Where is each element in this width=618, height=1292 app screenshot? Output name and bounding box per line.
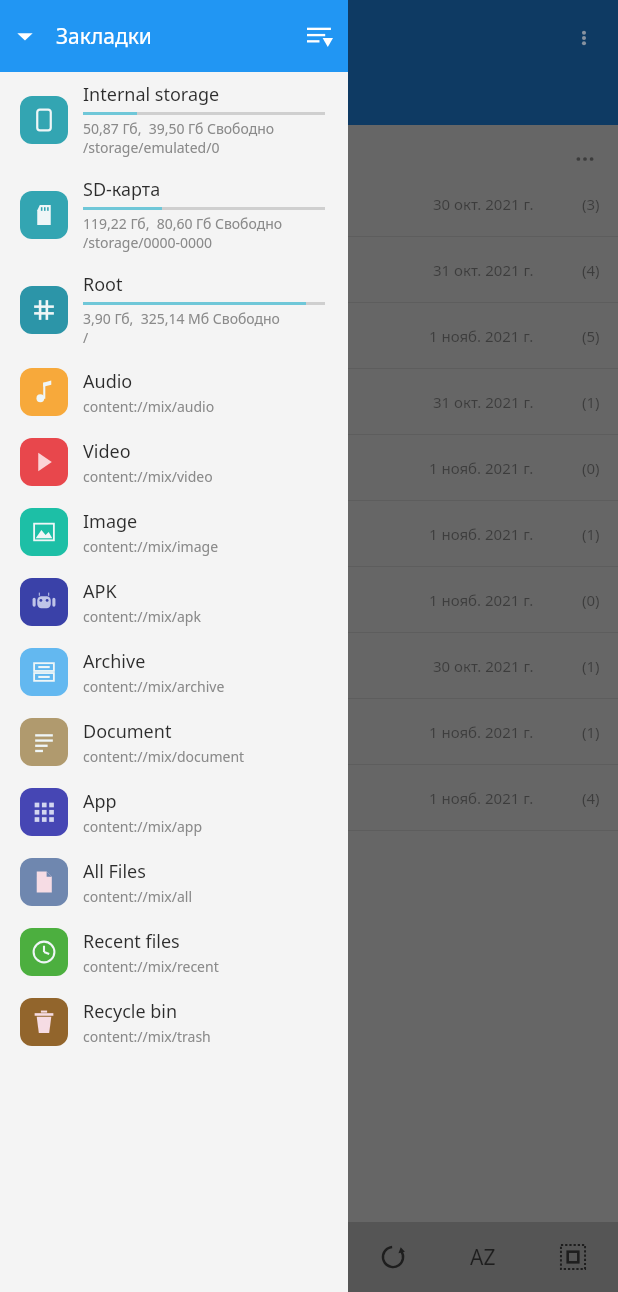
- staticText: SD-карта: [83, 177, 161, 202]
- staticText: 1 нояб. 2021 г.: [429, 590, 534, 610]
- staticText: Audio: [83, 369, 133, 394]
- staticText: content://mix/audio: [83, 397, 215, 416]
- staticText: content://mix/trash: [83, 1027, 211, 1046]
- button[interactable]: 1 нояб. 2021 г.: [0, 435, 618, 501]
- button[interactable]: Archive: [0, 637, 348, 707]
- staticText: (4): [582, 788, 600, 808]
- button[interactable]: 31 окт. 2021 г.: [0, 369, 618, 435]
- staticText: App: [83, 789, 117, 814]
- button[interactable]: Refresh: [348, 1222, 438, 1292]
- staticText: content://mix/app: [83, 817, 203, 836]
- staticText: 50,87 Гб, 39,50 Гб Свободно: [83, 119, 275, 138]
- button[interactable]: Column options: [565, 139, 605, 179]
- staticText: 1 нояб. 2021 г.: [429, 326, 534, 346]
- button[interactable]: 31 окт. 2021 г.: [0, 237, 618, 303]
- staticText: Document: [83, 719, 172, 744]
- staticText: 31 окт. 2021 г.: [433, 392, 534, 412]
- button[interactable]: Document: [0, 707, 348, 777]
- staticText: 1 нояб. 2021 г.: [429, 722, 534, 742]
- button[interactable]: 1 нояб. 2021 г.: [0, 567, 618, 633]
- staticText: 1 нояб. 2021 г.: [429, 524, 534, 544]
- staticText: All Files: [83, 859, 146, 884]
- staticText: content://mix/video: [83, 467, 213, 486]
- staticText: 31 окт. 2021 г.: [433, 260, 534, 280]
- staticText: /storage/0000-0000: [83, 233, 213, 252]
- staticText: Archive: [83, 649, 146, 674]
- button[interactable]: All Files: [0, 847, 348, 917]
- staticText: Image: [83, 509, 138, 534]
- staticText: (3): [582, 194, 600, 214]
- staticText: content://mix/archive: [83, 677, 225, 696]
- staticText: 119,22 Гб, 80,60 Гб Свободно: [83, 214, 283, 233]
- button[interactable]: 1 нояб. 2021 г.: [0, 501, 618, 567]
- button[interactable]: 1 нояб. 2021 г.: [0, 303, 618, 369]
- staticText: 30 окт. 2021 г.: [433, 656, 534, 676]
- staticText: Recycle bin: [83, 999, 178, 1024]
- staticText: /storage/emulated/0: [83, 138, 220, 157]
- staticText: AZ: [470, 1243, 496, 1272]
- button[interactable]: APK: [0, 567, 348, 637]
- staticText: 3,90 Гб, 325,14 Мб Свободно: [83, 309, 280, 328]
- staticText: content://mix/image: [83, 537, 219, 556]
- staticText: (1): [582, 722, 600, 742]
- staticText: (1): [582, 656, 600, 676]
- staticText: Закладки: [56, 22, 152, 51]
- staticText: content://mix/recent: [83, 957, 219, 976]
- staticText: /: [83, 328, 89, 347]
- staticText: (1): [582, 524, 600, 544]
- button[interactable]: Sort: [292, 8, 348, 64]
- staticText: content://mix/apk: [83, 607, 201, 626]
- button[interactable]: Image: [0, 497, 348, 567]
- staticText: content://mix/all: [83, 887, 193, 906]
- staticText: (0): [582, 458, 600, 478]
- staticText: content://mix/document: [83, 747, 245, 766]
- button[interactable]: Recent files: [0, 917, 348, 987]
- button[interactable]: 1 нояб. 2021 г.: [0, 699, 618, 765]
- button[interactable]: Recycle bin: [0, 987, 348, 1057]
- button[interactable]: 30 окт. 2021 г.: [0, 633, 618, 699]
- staticText: (0): [582, 590, 600, 610]
- staticText: 1 нояб. 2021 г.: [429, 788, 534, 808]
- button[interactable]: Video: [0, 427, 348, 497]
- button[interactable]: Select all: [528, 1222, 618, 1292]
- staticText: (1): [582, 392, 600, 412]
- button[interactable]: App: [0, 777, 348, 847]
- button[interactable]: Internal storage: [0, 72, 348, 167]
- button[interactable]: More options: [560, 14, 608, 62]
- staticText: (4): [582, 260, 600, 280]
- staticText: 1 нояб. 2021 г.: [429, 458, 534, 478]
- staticText: 30 окт. 2021 г.: [433, 194, 534, 214]
- button[interactable]: 1 нояб. 2021 г.: [0, 765, 618, 831]
- button[interactable]: AZ: [438, 1222, 528, 1292]
- staticText: Internal storage: [83, 82, 220, 107]
- staticText: (5): [582, 326, 600, 346]
- button[interactable]: Audio: [0, 357, 348, 427]
- button[interactable]: Закладки: [0, 0, 348, 72]
- staticText: APK: [83, 579, 117, 604]
- staticText: Root: [83, 272, 123, 297]
- staticText: Recent files: [83, 929, 180, 954]
- staticText: Video: [83, 439, 131, 464]
- button[interactable]: 30 окт. 2021 г.: [0, 171, 618, 237]
- button[interactable]: Root: [0, 262, 348, 357]
- button[interactable]: SD-карта: [0, 167, 348, 262]
